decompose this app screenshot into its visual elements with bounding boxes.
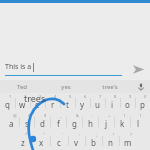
staticText: trees: [24, 92, 46, 104]
staticText: i: [111, 99, 114, 110]
staticText: j: [105, 118, 108, 129]
button[interactable]: +: [98, 112, 114, 131]
button[interactable]: $: [34, 112, 50, 131]
staticText: @: [13, 113, 17, 118]
staticText: ': [62, 132, 63, 137]
staticText: z: [21, 137, 25, 148]
button[interactable]: 2: [15, 93, 30, 112]
button[interactable]: 1: [0, 93, 15, 112]
staticText: c: [57, 137, 61, 148]
staticText: tree's: [102, 83, 118, 91]
staticText: t: [66, 99, 69, 110]
button[interactable]: ): [130, 112, 146, 131]
staticText: a: [9, 118, 14, 129]
staticText: s: [25, 118, 29, 129]
staticText: -: [92, 113, 94, 118]
staticText: 8: [114, 94, 117, 99]
staticText: x: [39, 137, 44, 148]
button[interactable]: trees: [24, 92, 46, 104]
staticText: 2: [24, 94, 27, 99]
staticText: r: [51, 99, 55, 110]
staticText: l: [137, 118, 140, 129]
button[interactable]: 9: [120, 93, 135, 112]
staticText: n: [108, 137, 113, 148]
staticText: m: [124, 137, 132, 148]
staticText: This is a: [5, 62, 32, 72]
button[interactable]: @: [4, 112, 19, 131]
staticText: 3: [39, 94, 42, 99]
staticText: 0: [144, 94, 147, 99]
button[interactable]: :: [68, 131, 85, 150]
staticText: u: [95, 99, 100, 110]
button[interactable]: Send: [126, 57, 150, 81]
staticText: y: [80, 99, 85, 110]
button[interactable]: This is a: [5, 62, 122, 76]
staticText: 1: [9, 94, 12, 99]
button[interactable]: 8: [105, 93, 120, 112]
staticText: yes: [61, 83, 71, 91]
button[interactable]: 4: [45, 93, 60, 112]
staticText: ": [43, 132, 45, 137]
staticText: f: [57, 118, 60, 129]
staticText: ): [140, 113, 142, 118]
staticText: ;: [96, 132, 98, 137]
staticText: &: [76, 113, 79, 118]
staticText: +: [108, 113, 111, 118]
button[interactable]: *: [14, 131, 32, 150]
staticText: v: [74, 137, 79, 148]
button[interactable]: Ted: [0, 80, 44, 93]
button[interactable]: ': [50, 131, 68, 150]
button[interactable]: 7: [90, 93, 105, 112]
staticText: 9: [129, 94, 132, 99]
button[interactable]: ": [32, 131, 50, 150]
button[interactable]: -: [82, 112, 98, 131]
staticText: :: [79, 132, 81, 137]
button[interactable]: yes: [44, 80, 88, 93]
staticText: 7: [99, 94, 102, 99]
button[interactable]: !: [102, 131, 119, 150]
staticText: 6: [84, 94, 87, 99]
button[interactable]: #: [19, 112, 34, 131]
staticText: p: [140, 99, 145, 110]
button[interactable]: 3: [30, 93, 45, 112]
staticText: !: [113, 132, 115, 137]
staticText: q: [5, 99, 10, 110]
staticText: Ted: [17, 83, 27, 91]
button[interactable]: tree's: [88, 80, 132, 93]
button[interactable]: ?: [119, 131, 136, 150]
staticText: *: [25, 132, 28, 137]
staticText: 5: [69, 94, 72, 99]
staticText: d: [40, 118, 45, 129]
staticText: _: [60, 113, 62, 118]
staticText: w: [19, 99, 26, 110]
button[interactable]: Voice input: [132, 80, 150, 93]
staticText: o: [125, 99, 130, 110]
staticText: k: [120, 118, 125, 129]
staticText: h: [88, 118, 93, 129]
button[interactable]: (: [114, 112, 130, 131]
staticText: 4: [54, 94, 57, 99]
staticText: b: [91, 137, 96, 148]
staticText: #: [28, 113, 31, 118]
button[interactable]: _: [50, 112, 66, 131]
button[interactable]: &: [66, 112, 82, 131]
button[interactable]: 6: [75, 93, 90, 112]
staticText: ?: [130, 132, 132, 137]
staticText: g: [72, 118, 77, 129]
button[interactable]: 5: [60, 93, 75, 112]
staticText: e: [35, 99, 40, 110]
staticText: (: [124, 113, 126, 118]
button[interactable]: ;: [85, 131, 102, 150]
staticText: $: [44, 113, 47, 118]
button[interactable]: 0: [135, 93, 150, 112]
